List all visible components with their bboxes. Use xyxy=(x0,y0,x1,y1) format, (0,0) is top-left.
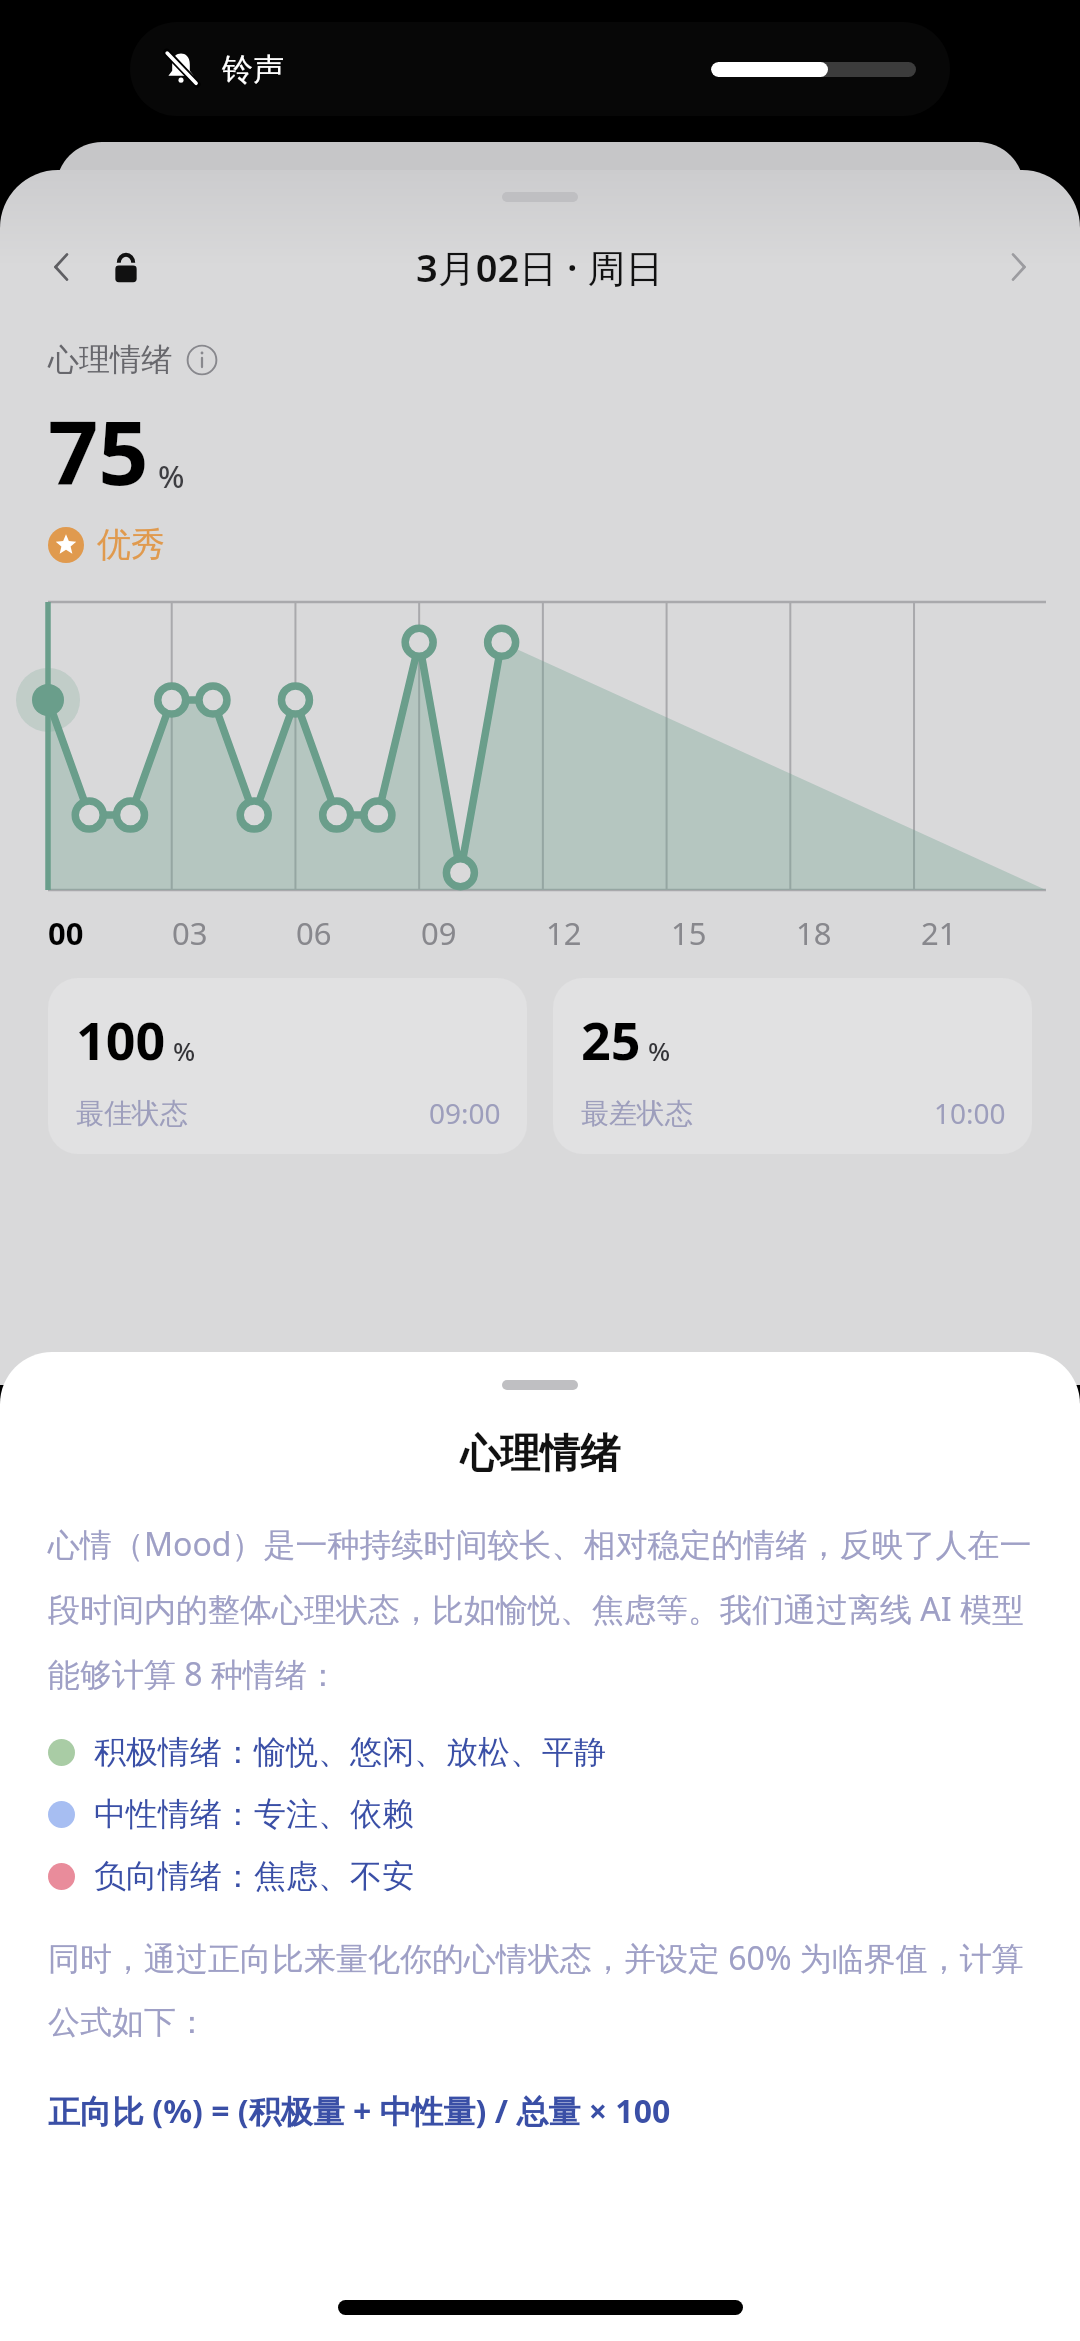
button[interactable]: About mental mood xyxy=(184,342,220,378)
staticText: % xyxy=(648,1033,671,1068)
button[interactable]: 积极情绪：愉悦、悠闲、放松、平静 xyxy=(48,1732,1032,1772)
staticText: 优秀 xyxy=(97,523,165,566)
staticText: 中性情绪：专注、依赖 xyxy=(94,1794,414,1834)
staticText: 18 xyxy=(796,912,832,954)
staticText: 负向情绪：焦虑、不安 xyxy=(94,1856,414,1896)
staticText: 3月02日 · 周日 xyxy=(416,241,664,293)
button[interactable]: 负向情绪：焦虑、不安 xyxy=(48,1856,1032,1896)
staticText: 铃声 xyxy=(222,50,284,89)
button[interactable]: Previous day xyxy=(34,239,90,295)
staticText: 12 xyxy=(546,912,582,954)
button[interactable]: Ringer muted xyxy=(130,22,950,116)
staticText: 15 xyxy=(671,912,707,954)
staticText: 心理情绪 xyxy=(460,1428,620,1478)
staticText: 同时，通过正向比来量化你的心情状态，并设定 60% 为临界值，计算公式如下： xyxy=(48,1936,1032,2043)
staticText: 100 xyxy=(76,1004,166,1075)
staticText: % xyxy=(158,455,185,497)
staticText: 06 xyxy=(296,912,332,954)
staticText: 积极情绪：愉悦、悠闲、放松、平静 xyxy=(94,1732,606,1772)
staticText: 75 xyxy=(48,391,149,511)
other: Ringer muted xyxy=(160,48,202,90)
staticText: 09 xyxy=(421,912,457,954)
button[interactable]: 100 xyxy=(48,978,527,1154)
staticText: 心情（Mood）是一种持续时间较长、相对稳定的情绪，反映了人在一段时间内的整体心… xyxy=(48,1522,1032,1696)
staticText: 10:00 xyxy=(934,1094,1006,1132)
staticText: 03 xyxy=(172,912,208,954)
staticText: 最差状态 xyxy=(581,1096,693,1131)
button[interactable]: Privacy lock xyxy=(100,241,152,293)
staticText: % xyxy=(173,1033,196,1068)
staticText: 25 xyxy=(581,1004,641,1075)
staticText: 09:00 xyxy=(429,1094,501,1132)
button[interactable]: 25 xyxy=(553,978,1032,1154)
staticText: 正向比 (%) = (积极量 + 中性量) / 总量 × 100 xyxy=(48,2089,671,2133)
staticText: 最佳状态 xyxy=(76,1096,188,1131)
staticText: 心理情绪 xyxy=(48,340,172,379)
staticText: 00 xyxy=(48,912,84,954)
staticText: 21 xyxy=(921,912,957,954)
button[interactable]: 中性情绪：专注、依赖 xyxy=(48,1794,1032,1834)
button[interactable]: Next day xyxy=(990,239,1046,295)
